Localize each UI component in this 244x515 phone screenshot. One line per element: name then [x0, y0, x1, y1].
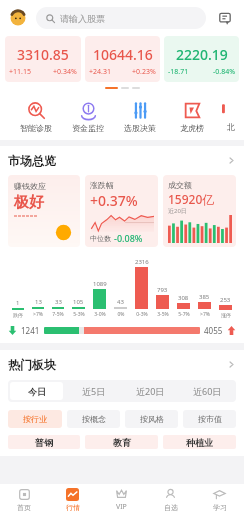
staticText: 按市值 [198, 414, 222, 424]
staticText: 今日 [28, 386, 46, 397]
staticText: 跌停 [13, 312, 23, 318]
button[interactable]: 赚钱效应 [8, 175, 80, 247]
staticText: 种植业 [186, 437, 213, 448]
staticText: 近60日 [193, 385, 222, 397]
staticText: 0-3% [136, 311, 148, 318]
staticText: 资金监控 [72, 123, 104, 133]
staticText: 北 [227, 122, 235, 132]
staticText: +24.31 [89, 67, 111, 77]
staticText: 43 [117, 298, 124, 306]
staticText: 1089 [93, 280, 107, 288]
staticText: 按风格 [140, 414, 164, 424]
staticText: 253 [220, 296, 231, 304]
button[interactable]: 近5日 [67, 382, 120, 400]
staticText: 793 [157, 286, 168, 294]
button[interactable]: 成交额 [163, 175, 236, 247]
staticText: 3-5% [157, 311, 169, 318]
button[interactable]: 行情 [48, 484, 97, 515]
button[interactable]: 市场总览 [8, 153, 236, 168]
staticText: 龙虎榜 [180, 123, 204, 133]
staticText: 385 [199, 293, 210, 301]
staticText: 选股决策 [124, 123, 156, 133]
button[interactable]: 智能诊股 [10, 98, 62, 133]
staticText: 5-7% [178, 311, 190, 318]
staticText: 请输入股票 [60, 13, 105, 24]
staticText: 4055 [204, 325, 223, 336]
staticText: 普钢 [35, 437, 53, 448]
button[interactable]: 涨跌幅 [85, 175, 158, 247]
staticText: 首页 [17, 503, 31, 512]
button[interactable]: 近60日 [181, 382, 234, 400]
staticText: 成交额 [168, 180, 192, 190]
staticText: 15920亿 [168, 191, 215, 207]
staticText: 33 [55, 298, 62, 306]
button[interactable]: 热门板块 [8, 357, 236, 372]
staticText: 2220.19 [176, 45, 228, 64]
staticText: 近5日 [82, 385, 106, 397]
staticText: 学习 [213, 503, 227, 512]
staticText: 涨停 [221, 312, 231, 318]
button[interactable]: 今日 [10, 382, 63, 400]
staticText: 极好 [14, 193, 44, 212]
staticText: 近20日 [136, 385, 165, 397]
staticText: 行情 [66, 503, 80, 512]
staticText: 近20日 [168, 207, 187, 215]
staticText: VIP [116, 502, 127, 512]
staticText: 1241 [21, 325, 40, 336]
staticText: 自选 [164, 503, 178, 512]
staticText: 智能诊股 [20, 123, 52, 133]
button[interactable]: 按风格 [125, 410, 178, 428]
staticText: 市场总览 [8, 153, 56, 168]
button[interactable]: 自选 [146, 484, 195, 515]
button[interactable]: 教育 [85, 435, 158, 449]
staticText: 教育 [113, 437, 131, 448]
staticText: >7% [33, 311, 43, 318]
staticText: 105 [73, 298, 84, 306]
staticText: 10644.16 [93, 45, 153, 64]
staticText: -0.84% [213, 67, 235, 77]
button[interactable]: 首页 [0, 484, 48, 515]
button[interactable]: 资金监控 [62, 98, 114, 133]
staticText: 按概念 [82, 414, 106, 424]
button[interactable]: 种植业 [163, 435, 236, 449]
button[interactable]: VIP [97, 484, 146, 515]
button[interactable]: 2220.19 [164, 36, 239, 82]
staticText: 3-0% [94, 311, 106, 318]
button[interactable]: 北 [218, 98, 244, 132]
button[interactable]: 按行业 [8, 410, 62, 428]
button[interactable]: 按市值 [183, 410, 236, 428]
staticText: +0.37% [90, 191, 138, 210]
button[interactable]: 学习 [195, 484, 244, 515]
staticText: -18.71 [168, 67, 189, 77]
staticText: 按行业 [23, 414, 47, 424]
button[interactable]: Messages [214, 7, 236, 29]
staticText: -0.08% [114, 232, 143, 244]
staticText: 13 [35, 298, 42, 306]
staticText: 涨跌幅 [90, 180, 114, 190]
staticText: 1 [16, 299, 20, 307]
staticText: +11.15 [9, 67, 31, 77]
staticText: +0.34% [53, 67, 77, 77]
button[interactable]: 请输入股票 [36, 7, 206, 29]
button[interactable]: 近20日 [124, 382, 177, 400]
staticText: 中位数 [90, 234, 111, 243]
button[interactable]: 10644.16 [85, 36, 160, 82]
staticText: 赚钱效应 [14, 181, 46, 191]
button[interactable]: Avatar [8, 8, 28, 28]
staticText: 5-3% [73, 311, 85, 318]
staticText: 2316 [135, 258, 149, 266]
button[interactable]: 龙虎榜 [166, 98, 218, 133]
staticText: 308 [178, 294, 189, 302]
button[interactable]: 3310.85 [5, 36, 81, 82]
staticText: 热门板块 [8, 357, 56, 372]
staticText: >7% [200, 311, 210, 318]
staticText: 3310.85 [17, 45, 69, 64]
button[interactable]: 普钢 [8, 435, 80, 449]
staticText: 7-5% [52, 311, 64, 318]
staticText: 0% [117, 311, 125, 318]
staticText: +0.23% [132, 67, 156, 77]
button[interactable]: 选股决策 [114, 98, 166, 133]
button[interactable]: 按概念 [67, 410, 120, 428]
